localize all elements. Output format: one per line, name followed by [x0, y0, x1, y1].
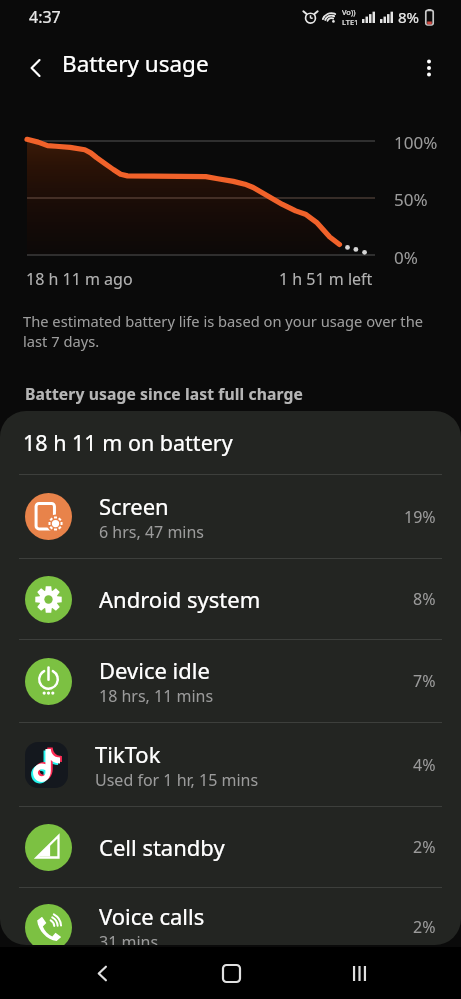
staticText: Voice calls: [99, 901, 205, 931]
button[interactable]: Back: [14, 46, 58, 90]
staticText: 2%: [413, 836, 436, 858]
button[interactable]: Device idle: [0, 640, 461, 722]
staticText: 7%: [413, 670, 436, 692]
staticText: 1 h 51 m left: [279, 268, 373, 290]
button[interactable]: TikTok: [0, 723, 461, 806]
staticText: 100%: [394, 131, 438, 154]
staticText: Android system: [99, 584, 261, 614]
staticText: 2%: [413, 916, 436, 938]
staticText: 18 hrs, 11 mins: [99, 685, 214, 707]
staticText: 31 mins: [99, 931, 159, 945]
staticText: 50%: [394, 188, 428, 211]
staticText: 8%: [398, 7, 420, 27]
staticText: Cell standby: [99, 832, 225, 862]
staticText: Screen: [99, 491, 169, 521]
button[interactable]: More options: [407, 46, 451, 90]
staticText: 18 h 11 m on battery: [23, 428, 233, 457]
button[interactable]: Screen: [0, 475, 461, 558]
staticText: Battery usage since last full charge: [25, 383, 303, 404]
staticText: Vo)): [342, 7, 356, 17]
staticText: The estimated battery life is based on y…: [23, 311, 424, 352]
staticText: TikTok: [95, 739, 161, 769]
staticText: 6 hrs, 47 mins: [99, 521, 205, 543]
button[interactable]: Cell standby: [0, 807, 461, 887]
staticText: 8%: [413, 588, 436, 610]
button[interactable]: Recent apps: [333, 947, 385, 999]
button[interactable]: Android system: [0, 559, 461, 639]
staticText: Used for 1 hr, 15 mins: [95, 769, 259, 791]
staticText: 4%: [413, 754, 436, 776]
staticText: Battery usage: [62, 48, 209, 79]
button[interactable]: Voice calls: [0, 888, 461, 945]
button[interactable]: Home: [205, 947, 257, 999]
staticText: 19%: [404, 506, 436, 528]
staticText: 4:37: [29, 6, 61, 28]
staticText: LTE1: [342, 17, 359, 27]
button[interactable]: Back: [76, 947, 128, 999]
staticText: 0%: [394, 246, 418, 269]
staticText: 18 h 11 m ago: [26, 268, 133, 290]
staticText: Device idle: [99, 655, 210, 685]
